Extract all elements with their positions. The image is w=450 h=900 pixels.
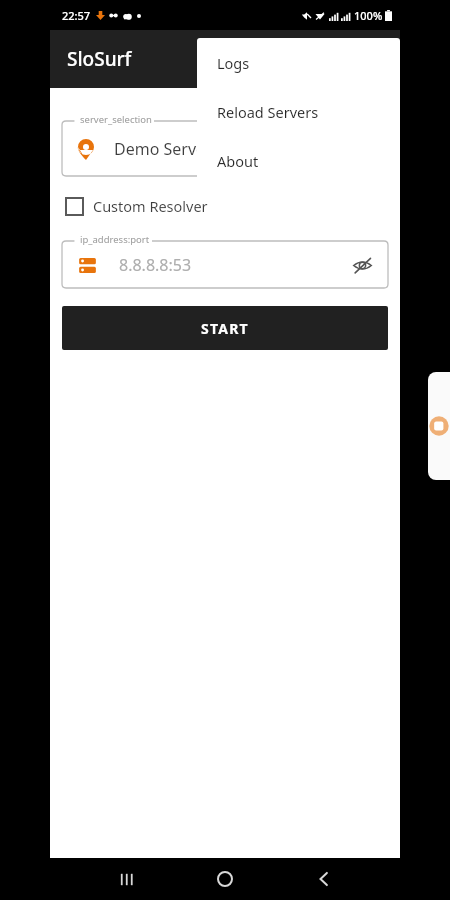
- button[interactable]: Toggle visibility: [348, 251, 376, 279]
- button[interactable]: Custom Resolver: [63, 193, 211, 219]
- button[interactable]: DNS: [62, 241, 388, 288]
- staticText: Logs: [217, 53, 250, 73]
- staticText: Reload Servers: [217, 102, 319, 122]
- button[interactable]: Back: [302, 858, 346, 900]
- staticText: SloSurf: [67, 46, 132, 72]
- staticText: About: [217, 151, 259, 171]
- other: Location: [78, 139, 94, 160]
- staticText: server_selection: [80, 113, 152, 126]
- button[interactable]: Home: [203, 858, 247, 900]
- other: DNS: [78, 256, 97, 275]
- button[interactable]: Recents: [105, 858, 149, 900]
- button[interactable]: Logs: [197, 38, 400, 87]
- staticText: 100%: [354, 8, 383, 23]
- staticText: 22:57: [62, 8, 91, 23]
- staticText: Custom Resolver: [93, 196, 208, 216]
- staticText: Demo Server: [114, 138, 212, 160]
- button[interactable]: Reload Servers: [197, 87, 400, 136]
- staticText: START: [201, 319, 249, 338]
- button[interactable]: START: [62, 306, 388, 350]
- button[interactable]: Location: [62, 121, 388, 176]
- staticText: 8.8.8.8:53: [119, 254, 192, 276]
- button[interactable]: About: [197, 136, 400, 185]
- button[interactable]: Open side panel: [428, 372, 450, 480]
- staticText: ip_address:port: [80, 233, 150, 246]
